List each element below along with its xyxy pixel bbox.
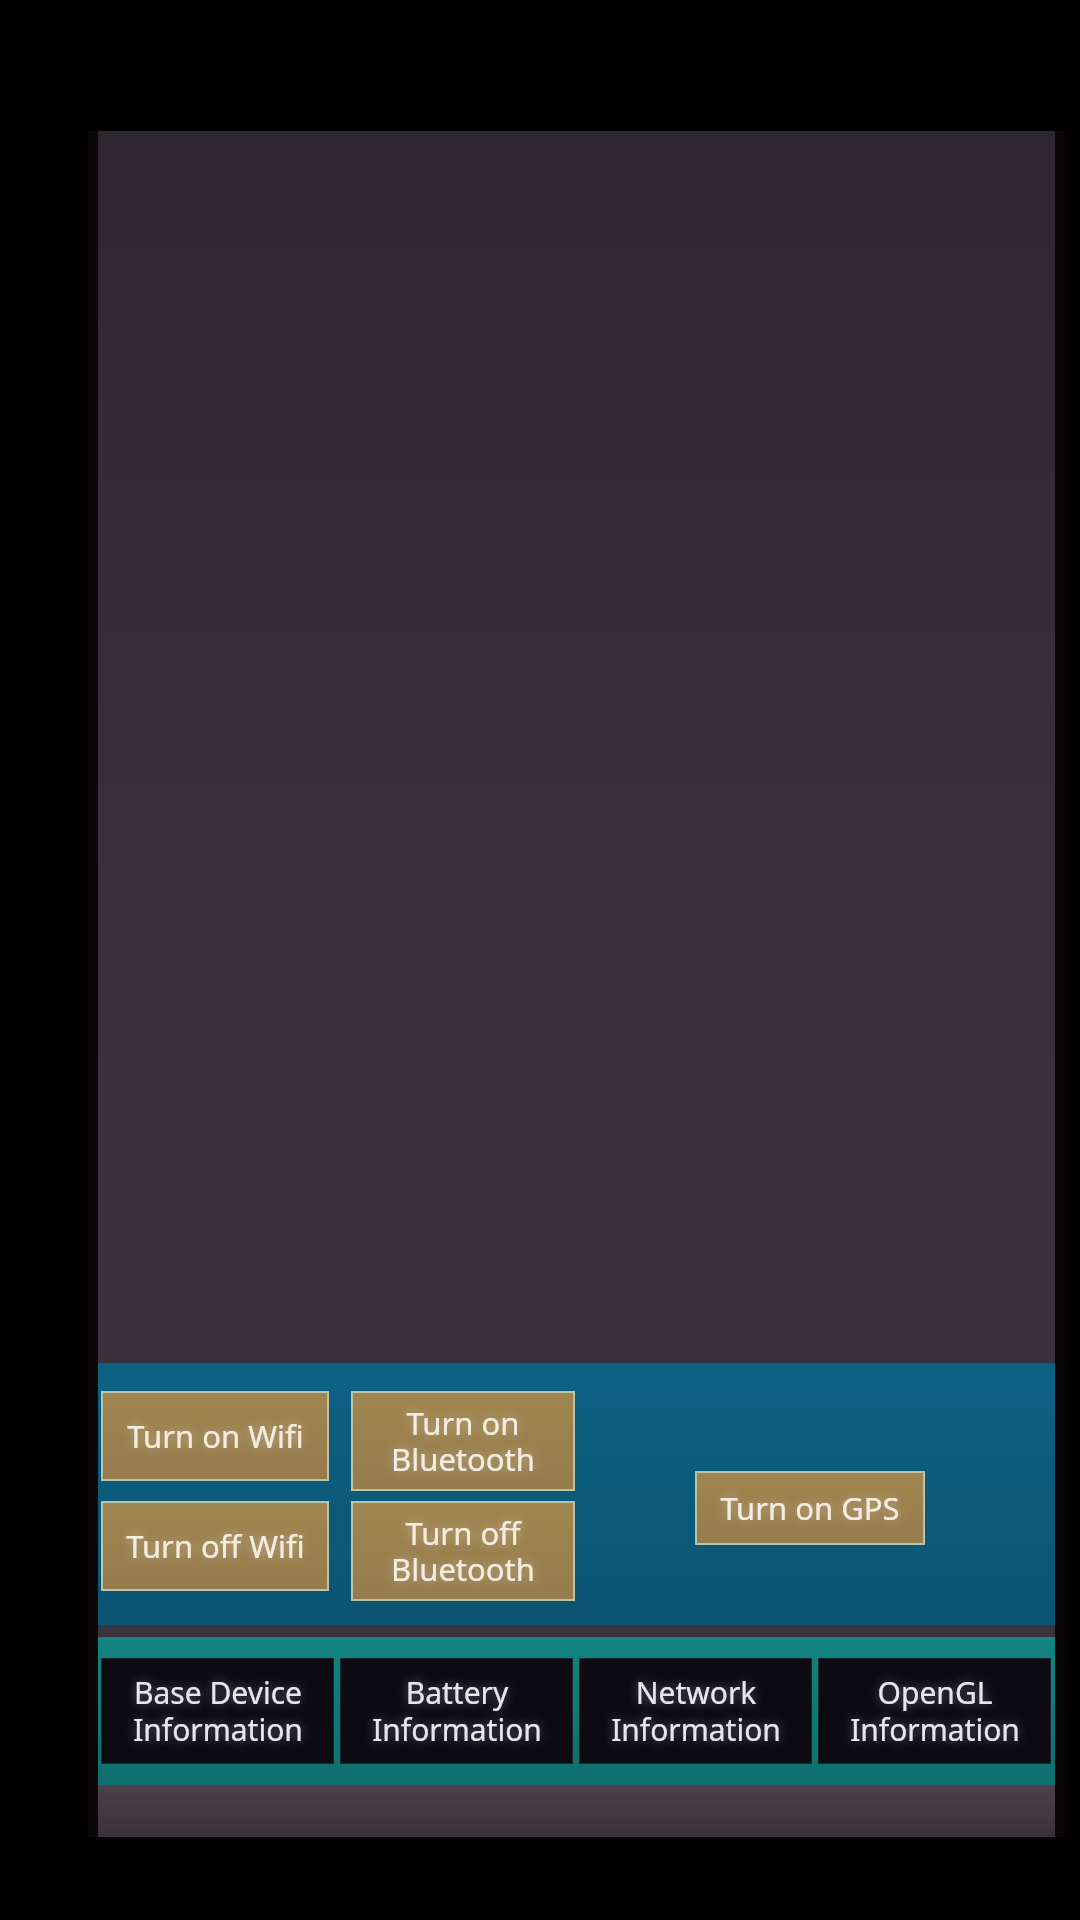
button[interactable]: Base Device Information xyxy=(102,1659,333,1763)
staticText: Base Device Information xyxy=(133,1672,303,1750)
button[interactable]: Turn on GPS xyxy=(697,1473,923,1543)
staticText: Battery Information xyxy=(372,1672,542,1750)
button[interactable]: Turn off Wifi xyxy=(103,1503,327,1589)
staticText: Turn off Wifi xyxy=(126,1525,305,1567)
staticText: Turn on Bluetooth xyxy=(391,1402,535,1480)
staticText: OpenGL Information xyxy=(850,1672,1020,1750)
staticText: Turn off Bluetooth xyxy=(391,1512,535,1590)
button[interactable]: OpenGL Information xyxy=(819,1659,1050,1763)
button[interactable]: Turn on Wifi xyxy=(103,1393,327,1479)
staticText: Turn on GPS xyxy=(720,1487,900,1529)
button[interactable]: Turn off Bluetooth xyxy=(353,1503,573,1599)
button[interactable]: Turn on Bluetooth xyxy=(353,1393,573,1489)
staticText: Turn on Wifi xyxy=(127,1415,304,1457)
button[interactable]: Network Information xyxy=(580,1659,811,1763)
staticText: Network Information xyxy=(611,1672,781,1750)
button[interactable]: Battery Information xyxy=(341,1659,572,1763)
